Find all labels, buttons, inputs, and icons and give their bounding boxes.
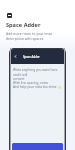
staticText: Add more room to your insta description … xyxy=(6,31,67,41)
other: Back xyxy=(14,55,17,58)
button[interactable]: App icon xyxy=(7,13,12,18)
staticText: Space Adder xyxy=(6,21,41,29)
staticText: And help your insta bio shine xyxy=(13,85,57,89)
button[interactable] xyxy=(12,143,63,150)
staticText: convert xyxy=(13,77,25,81)
staticText: Space Adder xyxy=(23,55,40,59)
staticText: With line spacing, extra xyxy=(13,81,48,85)
staticText: Write anything you want here and it will xyxy=(13,68,61,77)
button[interactable]: Back xyxy=(10,49,65,64)
